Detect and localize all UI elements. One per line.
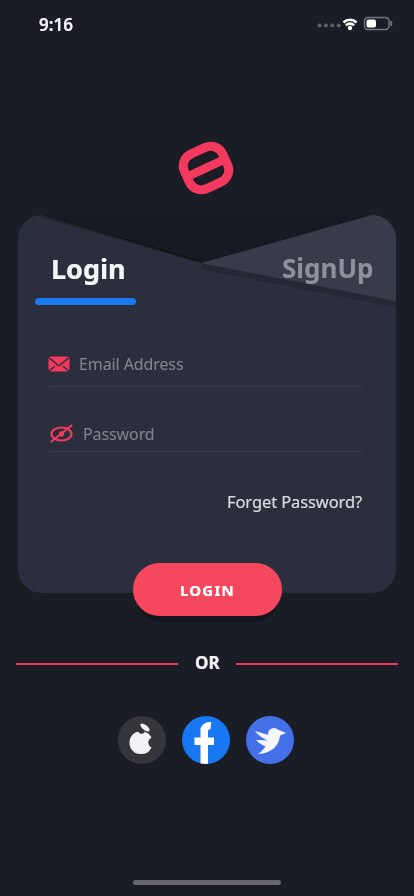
- staticText: Forget Password?: [227, 490, 363, 512]
- button[interactable]: LOGIN: [133, 563, 282, 616]
- staticText: Login: [51, 250, 126, 287]
- staticText: LOGIN: [180, 580, 235, 600]
- staticText: Password: [83, 423, 155, 445]
- button[interactable]: [182, 716, 230, 764]
- button[interactable]: Password: [40, 416, 370, 458]
- staticText: SignUp: [282, 250, 374, 285]
- button[interactable]: Forget Password?: [220, 484, 370, 518]
- button[interactable]: SignUp: [270, 245, 385, 290]
- button[interactable]: [118, 716, 166, 764]
- button[interactable]: Email Address: [40, 348, 370, 390]
- staticText: 9:16: [39, 13, 73, 36]
- button[interactable]: [246, 716, 294, 764]
- staticText: OR: [195, 651, 220, 674]
- staticText: Email Address: [79, 353, 184, 375]
